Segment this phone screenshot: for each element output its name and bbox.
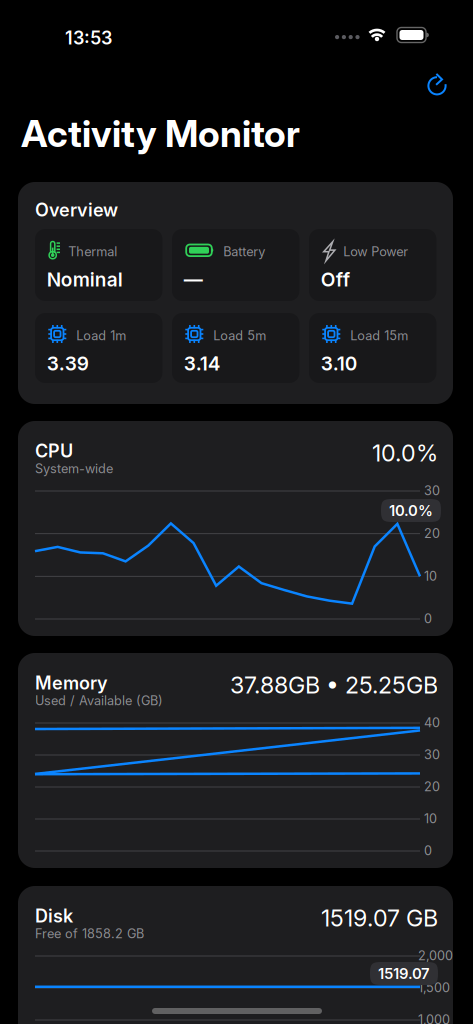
staticText: Used / Available (GB)	[35, 693, 163, 708]
button[interactable]: Load 5m	[172, 313, 299, 383]
button[interactable]: Load 15m	[309, 313, 436, 383]
staticText: 40	[424, 715, 440, 730]
staticText: Free of 1858.2 GB	[35, 926, 144, 941]
staticText: Low Power	[343, 244, 408, 259]
button[interactable]: Refresh	[416, 63, 458, 105]
staticText: 0	[424, 611, 432, 626]
staticText: —	[184, 268, 203, 291]
button[interactable]: Disk	[18, 886, 453, 1024]
staticText: 20	[424, 779, 440, 794]
staticText: Battery	[223, 244, 265, 259]
staticText: 1,000	[418, 1012, 450, 1024]
staticText: 30	[424, 747, 440, 762]
staticText: CPU	[35, 440, 73, 462]
staticText: 0	[424, 843, 432, 858]
button[interactable]: Battery	[172, 229, 299, 301]
staticText: Disk	[35, 905, 73, 927]
button[interactable]: Thermal	[35, 229, 162, 301]
staticText: Thermal	[68, 244, 117, 259]
staticText: Load 15m	[350, 328, 408, 343]
staticText: 37.88GB • 25.25GB	[230, 671, 438, 699]
staticText: 1,500	[418, 980, 450, 995]
button[interactable]: Low Power	[309, 229, 436, 301]
staticText: 10.0%	[389, 501, 433, 519]
button[interactable]: Load 1m	[35, 313, 162, 383]
staticText: Load 5m	[213, 328, 266, 343]
staticText: 3.14	[184, 352, 221, 375]
staticText: 2,000	[418, 948, 453, 963]
staticText: 30	[424, 483, 440, 498]
staticText: 10	[424, 568, 437, 584]
staticText: 1519.07 GB	[321, 904, 438, 932]
staticText: 13:53	[65, 27, 112, 49]
staticText: Nominal	[47, 268, 123, 291]
staticText: 3.10	[321, 352, 358, 375]
button[interactable]: CPU	[18, 421, 453, 636]
staticText: 3.39	[47, 352, 89, 375]
staticText: 10.0%	[372, 439, 438, 467]
staticText: System-wide	[35, 461, 113, 476]
staticText: 10	[424, 811, 437, 826]
staticText: 1519.07	[378, 964, 430, 982]
button[interactable]: Memory	[18, 653, 453, 868]
staticText: Overview	[35, 199, 118, 221]
staticText: Load 1m	[76, 328, 126, 343]
staticText: Memory	[35, 672, 108, 694]
staticText: 20	[424, 526, 440, 541]
staticText: Activity Monitor	[21, 111, 300, 156]
staticText: Off	[321, 268, 350, 291]
